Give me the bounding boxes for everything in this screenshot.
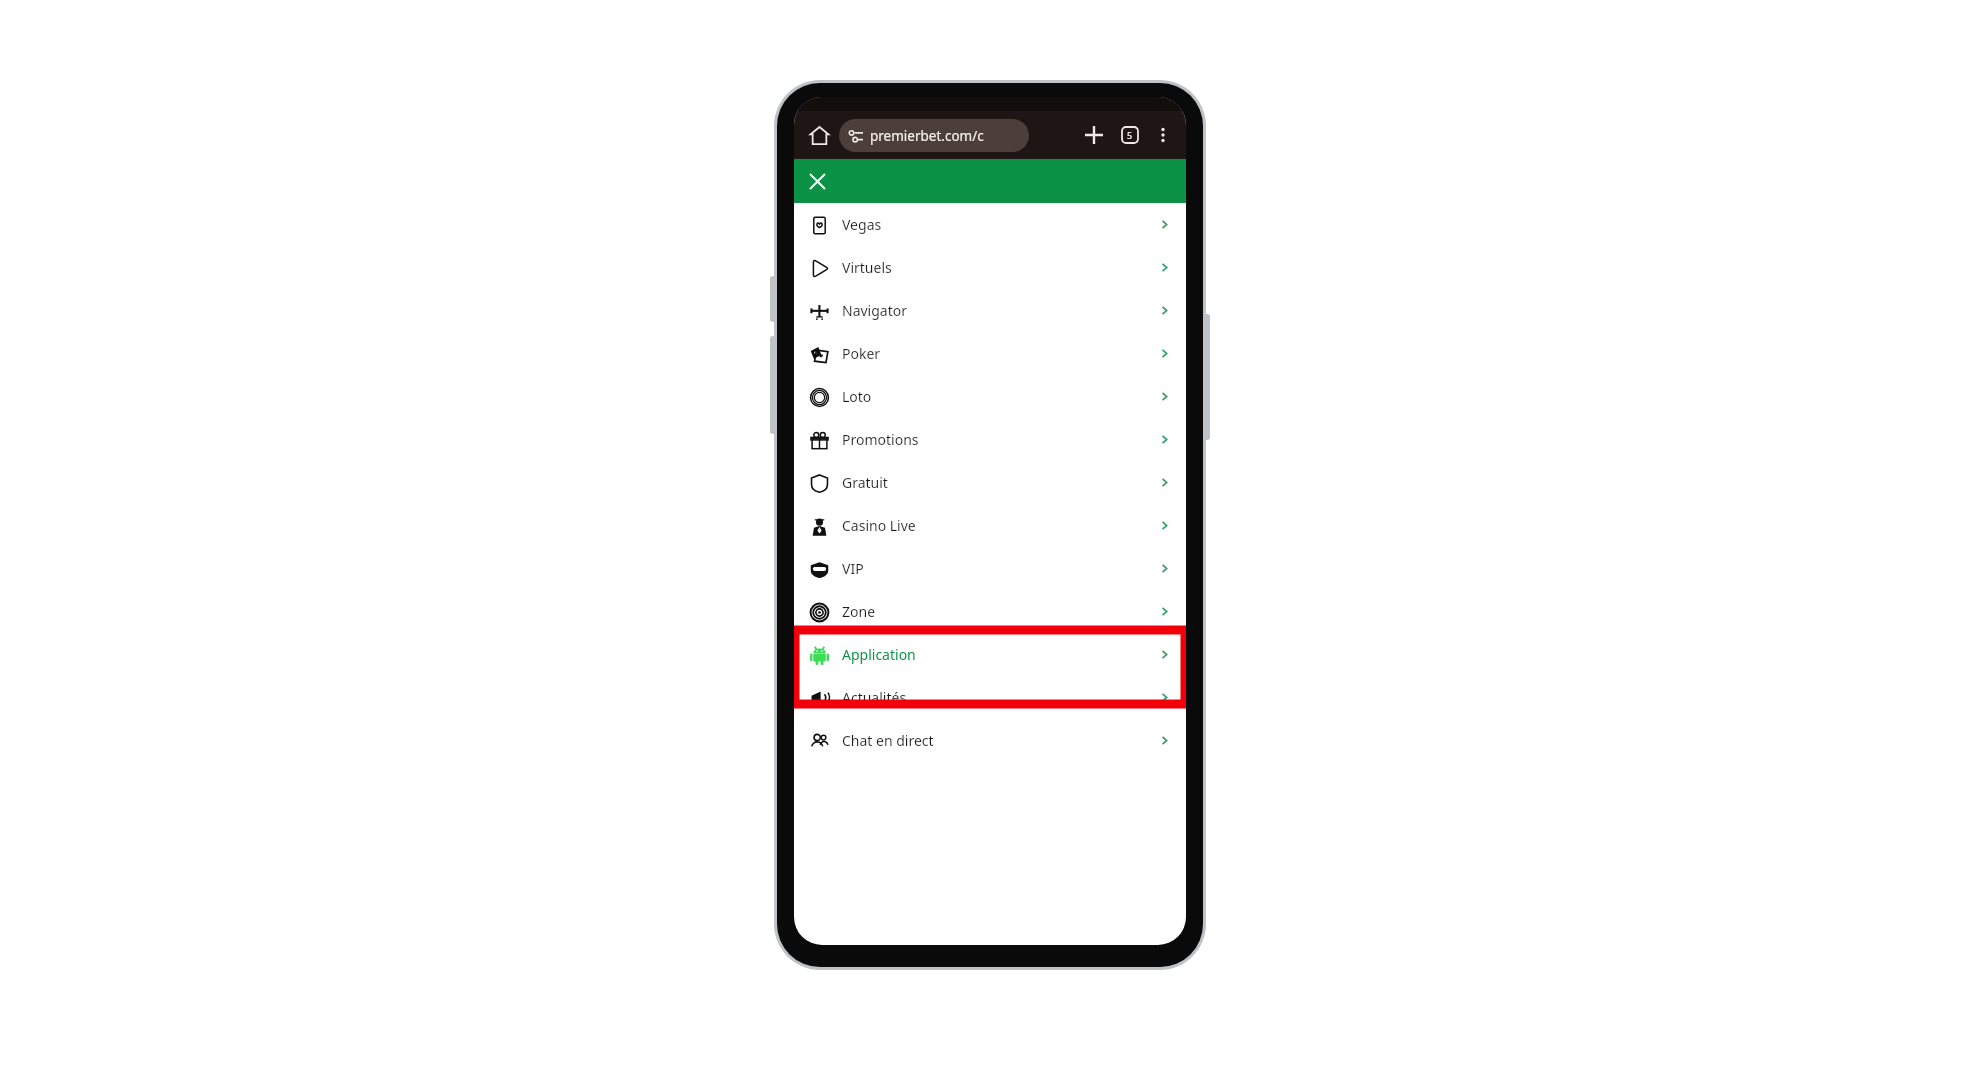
staticText: Virtuels (842, 258, 892, 277)
button[interactable]: Gratuit (794, 461, 1186, 504)
staticText: Loto (842, 387, 872, 406)
button[interactable]: Virtuels (794, 246, 1186, 289)
staticText: Promotions (842, 430, 919, 449)
staticText: VIP (842, 559, 864, 578)
button[interactable]: Vegas (794, 203, 1186, 246)
button[interactable]: Actualités (794, 676, 1186, 719)
button[interactable]: Application (794, 633, 1186, 676)
staticText: Navigator (842, 301, 907, 320)
button[interactable]: New tab (1079, 120, 1109, 150)
staticText: Casino Live (842, 516, 916, 535)
button[interactable]: VIP (794, 547, 1186, 590)
staticText: Vegas (842, 215, 882, 234)
staticText: Gratuit (842, 473, 888, 492)
button[interactable]: Casino Live (794, 504, 1186, 547)
staticText: Application (842, 645, 916, 664)
button[interactable]: Home (803, 119, 835, 151)
staticText: Actualités (842, 688, 907, 707)
button[interactable]: Chat en direct (794, 719, 1186, 762)
button[interactable]: Navigator (794, 289, 1186, 332)
button[interactable]: Promotions (794, 418, 1186, 461)
staticText: premierbet.com/c (870, 127, 984, 145)
button[interactable]: Poker (794, 332, 1186, 375)
button[interactable]: Tabs, 5 open (1115, 120, 1145, 150)
button[interactable]: More options (1149, 121, 1177, 149)
button[interactable]: Loto (794, 375, 1186, 418)
button[interactable]: Zone (794, 590, 1186, 633)
staticText: Chat en direct (842, 731, 934, 750)
button[interactable]: premierbet.com/c (839, 119, 1029, 152)
button[interactable]: Close menu (801, 165, 833, 197)
staticText: Zone (842, 602, 876, 621)
staticText: Poker (842, 344, 881, 363)
staticText: 5 (1127, 129, 1133, 141)
